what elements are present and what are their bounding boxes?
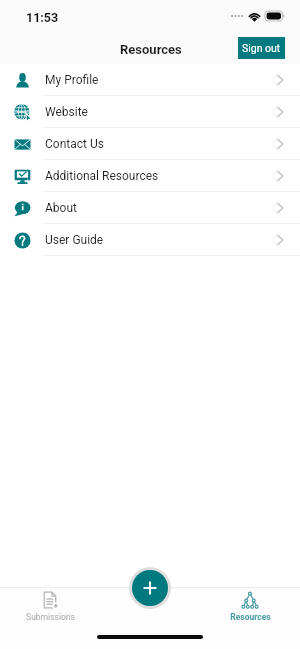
button[interactable]: Sign out [238, 37, 285, 59]
button[interactable]: Resources [200, 591, 300, 622]
staticText: About [45, 201, 77, 215]
staticText: User Guide [45, 233, 104, 247]
staticText: Contact Us [45, 137, 104, 151]
button[interactable]: Add [132, 570, 168, 606]
button[interactable]: Additional Resources [0, 160, 300, 192]
button[interactable]: User Guide [0, 224, 300, 256]
staticText: Resources [230, 612, 271, 622]
button[interactable]: Website [0, 96, 300, 128]
button[interactable]: Submissions [0, 591, 100, 622]
staticText: Website [45, 105, 88, 119]
button[interactable]: My Profile [0, 64, 300, 96]
staticText: Sign out [242, 42, 281, 54]
staticText: My Profile [45, 73, 99, 87]
staticText: Additional Resources [45, 169, 159, 183]
staticText: 11:53 [26, 10, 59, 25]
button[interactable]: Contact Us [0, 128, 300, 160]
staticText: Resources [120, 42, 182, 57]
staticText: Submissions [26, 612, 75, 622]
button[interactable]: About [0, 192, 300, 224]
